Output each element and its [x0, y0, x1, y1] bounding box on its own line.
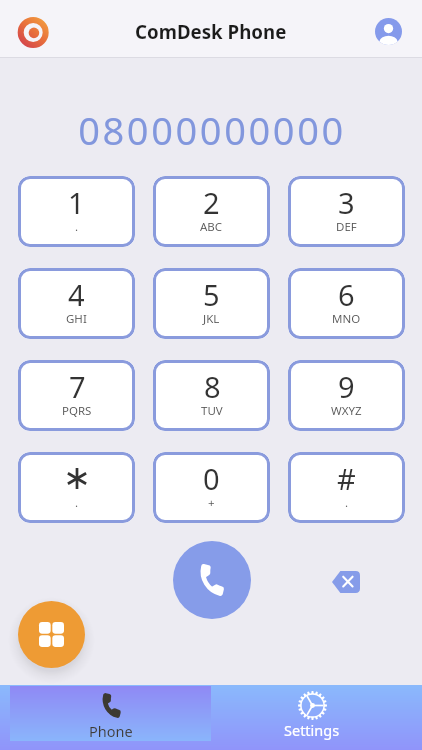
staticText: WXYZ: [331, 403, 362, 419]
staticText: #: [337, 459, 356, 493]
staticText: 0: [203, 459, 220, 493]
button[interactable]: .: [18, 452, 135, 523]
button[interactable]: Apps: [18, 601, 85, 668]
staticText: 9: [338, 367, 355, 401]
staticText: .: [345, 495, 349, 511]
button[interactable]: 9: [288, 360, 405, 431]
staticText: 3: [338, 183, 355, 217]
staticText: GHI: [66, 311, 87, 327]
button[interactable]: Backspace: [326, 562, 366, 602]
staticText: 8: [204, 367, 221, 401]
staticText: 2: [203, 183, 220, 217]
button[interactable]: 7: [18, 360, 135, 431]
button[interactable]: 6: [288, 268, 405, 339]
button[interactable]: Settings: [211, 685, 413, 750]
staticText: .: [75, 495, 79, 511]
button[interactable]: #: [288, 452, 405, 523]
button[interactable]: Logo: [14, 13, 52, 51]
button[interactable]: 3: [288, 176, 405, 247]
staticText: ABC: [200, 219, 223, 235]
button[interactable]: Call: [173, 541, 251, 619]
button[interactable]: Account: [375, 18, 402, 45]
staticText: JKL: [203, 311, 220, 327]
staticText: PQRS: [62, 403, 92, 419]
staticText: 6: [338, 275, 355, 309]
staticText: .: [75, 219, 79, 235]
staticText: 08000000000: [78, 104, 346, 150]
staticText: MNO: [332, 311, 361, 327]
staticText: TUV: [201, 403, 223, 419]
button[interactable]: 0: [153, 452, 270, 523]
button[interactable]: 1: [18, 176, 135, 247]
staticText: +: [208, 495, 215, 511]
staticText: 7: [69, 367, 86, 401]
button[interactable]: 2: [153, 176, 270, 247]
button[interactable]: 4: [18, 268, 135, 339]
staticText: 1: [68, 183, 85, 217]
button[interactable]: 5: [153, 268, 270, 339]
staticText: Settings: [284, 720, 340, 740]
staticText: DEF: [336, 219, 357, 235]
staticText: Phone: [89, 721, 133, 741]
staticText: 5: [203, 275, 220, 309]
button[interactable]: Phone: [10, 686, 211, 741]
staticText: ComDesk Phone: [135, 19, 287, 44]
button[interactable]: 8: [153, 360, 270, 431]
staticText: 4: [68, 275, 85, 309]
